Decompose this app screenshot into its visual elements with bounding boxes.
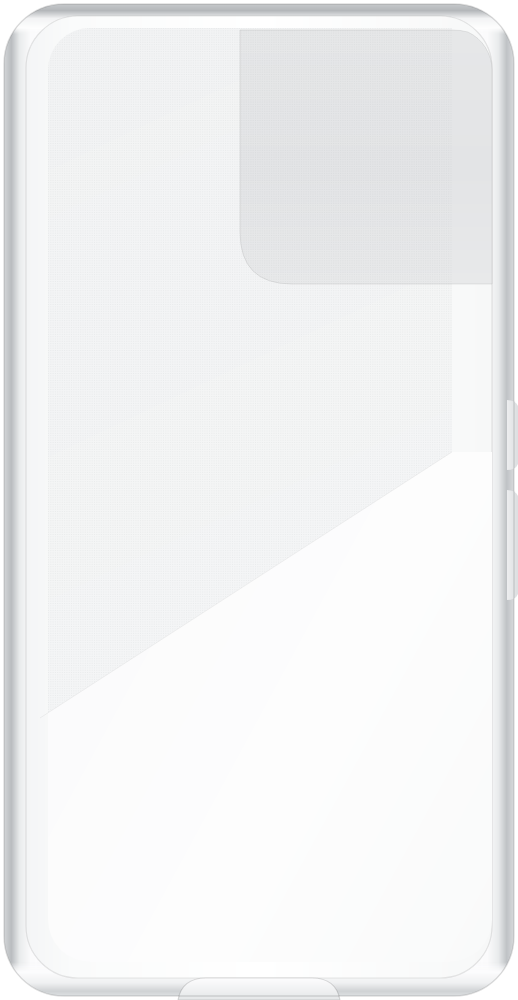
button[interactable]: Clear phone case product photo bbox=[0, 0, 518, 1000]
